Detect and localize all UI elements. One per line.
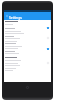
staticText: Settings: [9, 15, 22, 19]
button[interactable]: Enabled: [46, 47, 50, 51]
button[interactable]: Back: [5, 14, 9, 18]
button[interactable]: Disabled: [46, 61, 50, 65]
button[interactable]: Disabled: [46, 36, 50, 40]
button[interactable]: Home: [26, 86, 29, 89]
button[interactable]: Back: [4, 12, 51, 20]
button[interactable]: Enabled: [46, 26, 50, 30]
